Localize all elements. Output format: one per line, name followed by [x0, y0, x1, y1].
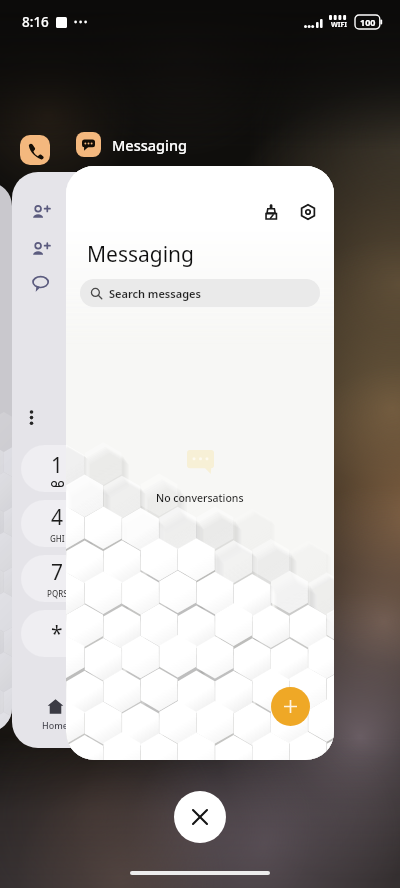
button[interactable]: Phone app task — [12, 172, 280, 748]
staticText: No conversations — [156, 491, 244, 505]
button[interactable]: Settings — [295, 199, 321, 225]
button[interactable]: Search messages — [80, 279, 320, 307]
button[interactable]: 4 — [21, 500, 93, 547]
staticText: Messaging — [87, 240, 195, 269]
staticText: PQRS — [47, 588, 68, 599]
staticText: 4 — [51, 503, 64, 532]
button[interactable]: Previous task — [0, 182, 12, 732]
button[interactable]: Phone app — [20, 135, 50, 165]
button[interactable]: Messaging task — [66, 166, 334, 760]
staticText: Home — [42, 719, 68, 731]
staticText: * — [51, 619, 63, 648]
staticText: Contacts — [222, 719, 260, 731]
button[interactable]: Messaging app — [76, 132, 101, 157]
staticText: WIFI — [331, 20, 348, 30]
button[interactable]: Clean up — [258, 199, 284, 225]
staticText: Search messages — [109, 286, 201, 301]
button[interactable]: Contacts — [218, 694, 264, 735]
staticText: 7 — [51, 558, 64, 587]
button[interactable]: New conversation — [271, 687, 310, 726]
button[interactable]: Home — [38, 694, 72, 735]
button[interactable]: * — [21, 610, 93, 657]
staticText: 1 — [51, 451, 64, 480]
button[interactable]: 1 — [21, 445, 93, 492]
staticText: Messaging — [112, 135, 188, 155]
staticText: 8:16 — [22, 13, 49, 31]
staticText: GHI — [50, 533, 65, 544]
staticText: 100 — [360, 16, 376, 28]
staticText: Recents — [128, 719, 162, 731]
button[interactable]: 7 — [21, 555, 93, 602]
button[interactable]: Close all — [174, 791, 226, 843]
button[interactable]: Recents — [124, 694, 166, 735]
